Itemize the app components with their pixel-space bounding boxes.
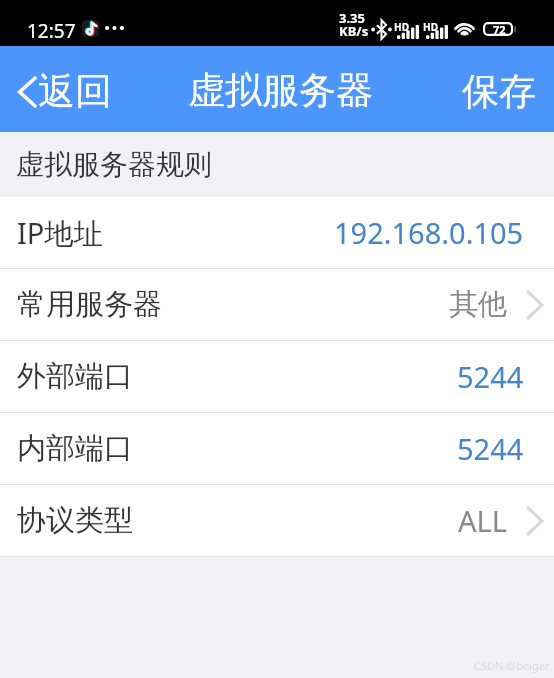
button[interactable]: 返回 xyxy=(0,62,126,121)
staticText: 返回 xyxy=(38,68,112,115)
staticText: HD xyxy=(423,20,438,34)
button[interactable]: 外部端口 xyxy=(0,341,554,413)
staticText: 常用服务器 xyxy=(17,286,162,323)
staticText: 内部端口 xyxy=(17,430,133,467)
staticText: 保存 xyxy=(462,68,536,115)
staticText: 12:57 xyxy=(27,18,76,44)
button[interactable]: 协议类型 xyxy=(0,485,554,557)
staticText: 192.168.0.105 xyxy=(334,213,524,252)
staticText: KB/s xyxy=(339,22,369,40)
button[interactable]: 常用服务器 xyxy=(0,269,554,341)
staticText: 虚拟服务器规则 xyxy=(16,147,212,182)
staticText: 其他 xyxy=(449,286,507,323)
staticText: IP地址 xyxy=(17,213,103,253)
staticText: 虚拟服务器 xyxy=(188,67,373,114)
staticText: 协议类型 xyxy=(17,502,133,539)
staticText: 外部端口 xyxy=(17,358,133,395)
button[interactable]: 内部端口 xyxy=(0,413,554,485)
button[interactable]: 保存 xyxy=(444,56,554,127)
staticText: 3.35 xyxy=(339,9,365,27)
button[interactable]: IP地址 xyxy=(0,197,554,269)
staticText: 72 xyxy=(493,22,506,36)
staticText: 5244 xyxy=(457,429,524,468)
staticText: CSDN @beiger xyxy=(474,658,550,673)
staticText: HD xyxy=(394,20,409,34)
staticText: 5244 xyxy=(457,357,524,396)
staticText: ALL xyxy=(458,501,507,540)
